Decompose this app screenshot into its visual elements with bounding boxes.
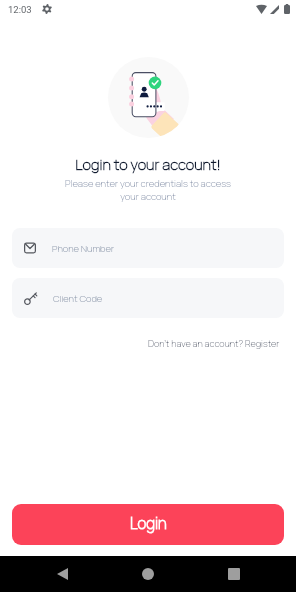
button[interactable]: Recent apps <box>191 556 277 592</box>
button[interactable]: Don't have an account? Register <box>145 334 283 353</box>
staticText: 12:03 <box>8 4 32 15</box>
staticText: Login to your account! <box>0 154 296 174</box>
button[interactable]: Phone Number <box>12 228 284 268</box>
staticText: Don't have an account? Register <box>148 337 280 350</box>
button[interactable]: Login <box>12 504 284 545</box>
staticText: Client Code <box>53 292 103 305</box>
staticText: Phone Number <box>52 242 115 255</box>
staticText: Login <box>130 513 167 534</box>
staticText: Please enter your credentials to access … <box>0 177 296 203</box>
button[interactable]: Client Code <box>12 278 284 318</box>
button[interactable]: Back <box>19 556 105 592</box>
button[interactable]: Home <box>105 556 191 592</box>
